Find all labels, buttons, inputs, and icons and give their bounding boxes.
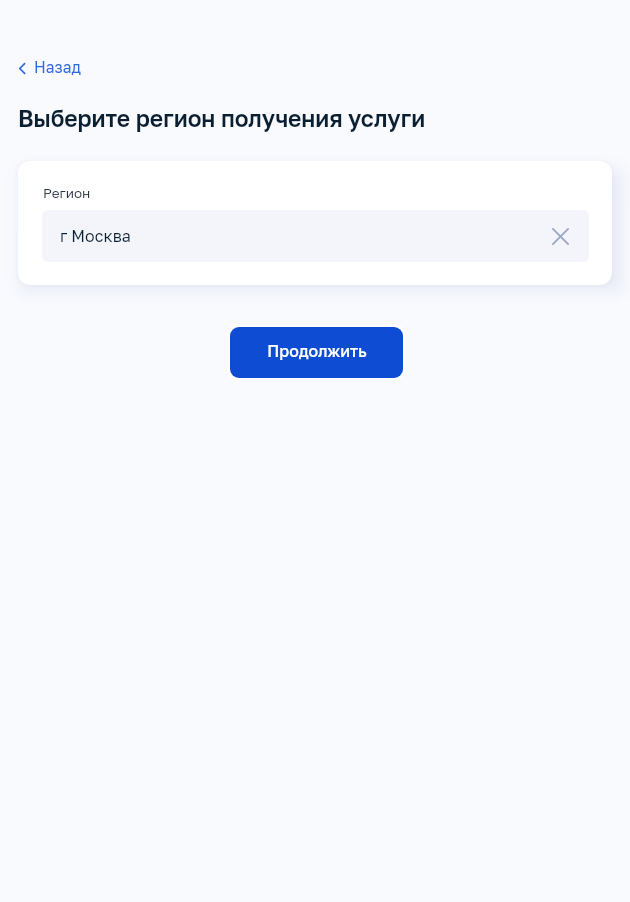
- staticText: Назад: [34, 58, 81, 77]
- button[interactable]: Продолжить: [227, 324, 405, 380]
- staticText: Выберите регион получения услуги: [18, 104, 426, 132]
- staticText: Регион: [43, 185, 91, 201]
- button[interactable]: г Москва: [42, 210, 589, 262]
- staticText: г Москва: [60, 226, 131, 245]
- button[interactable]: Очистить: [546, 221, 576, 251]
- staticText: Продолжить: [267, 341, 367, 360]
- button[interactable]: Назад: [13, 53, 87, 82]
